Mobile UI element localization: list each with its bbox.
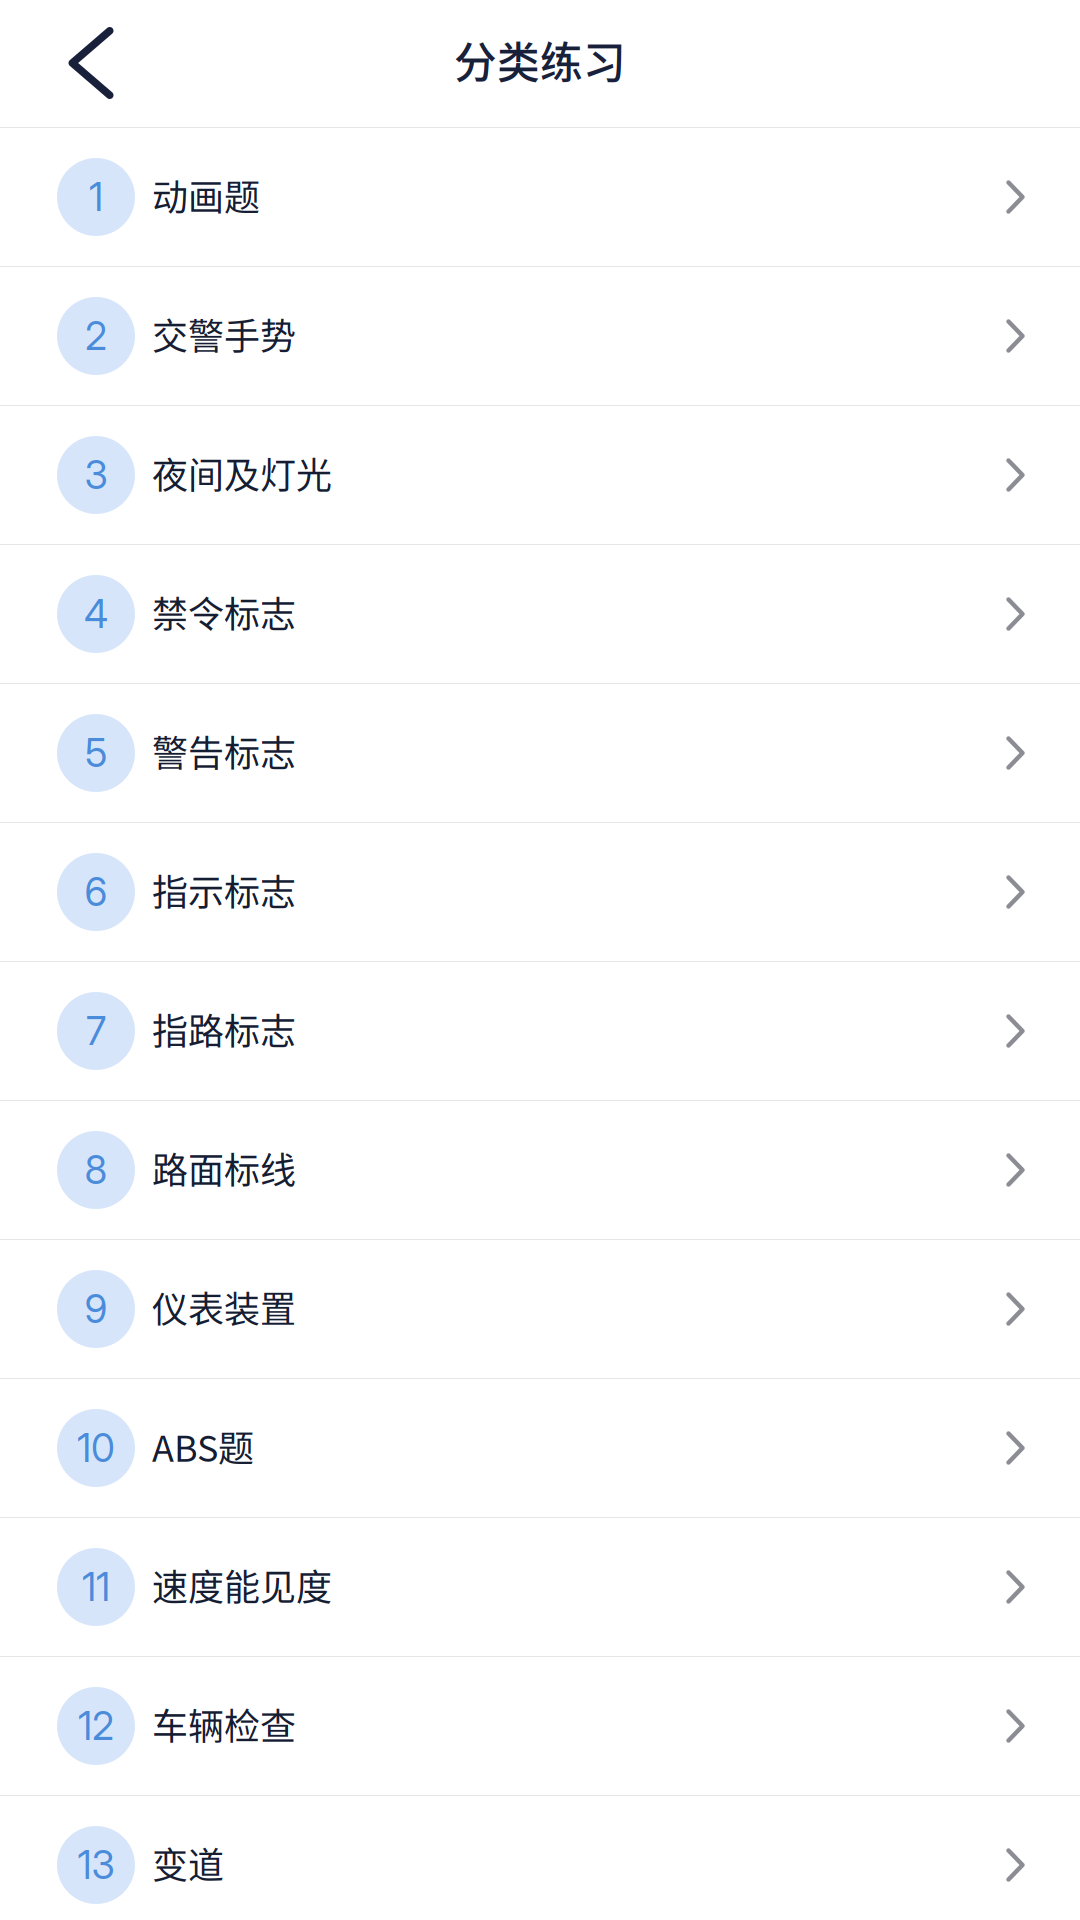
staticText: 分类练习	[454, 29, 626, 91]
button[interactable]: Back	[35, 7, 147, 119]
staticText: ABS题	[152, 1420, 254, 1472]
staticText: 禁令标志	[152, 586, 296, 638]
staticText: 变道	[152, 1837, 224, 1889]
button[interactable]: 3. 夜间及灯光	[0, 406, 1080, 544]
button[interactable]: 5. 警告标志	[0, 684, 1080, 822]
button[interactable]: 13. 变道	[0, 1796, 1080, 1920]
staticText: 9	[84, 1286, 107, 1332]
staticText: 8	[84, 1147, 107, 1193]
button[interactable]: 8. 路面标线	[0, 1101, 1080, 1239]
staticText: 6	[84, 869, 107, 915]
staticText: 速度能见度	[152, 1559, 332, 1611]
staticText: 2	[85, 313, 107, 359]
button[interactable]: 10. ABS题	[0, 1379, 1080, 1517]
staticText: 仪表装置	[152, 1281, 296, 1333]
staticText: 12	[78, 1703, 114, 1749]
staticText: 5	[85, 730, 107, 776]
button[interactable]: 9. 仪表装置	[0, 1240, 1080, 1378]
staticText: 1	[89, 174, 103, 220]
staticText: 夜间及灯光	[152, 447, 332, 499]
button[interactable]: 4. 禁令标志	[0, 545, 1080, 683]
staticText: 指示标志	[152, 864, 296, 916]
staticText: 11	[82, 1564, 110, 1610]
button[interactable]: 7. 指路标志	[0, 962, 1080, 1100]
button[interactable]: 1. 动画题	[0, 128, 1080, 266]
staticText: 3	[84, 452, 107, 498]
staticText: 4	[84, 591, 108, 637]
staticText: 路面标线	[152, 1142, 296, 1194]
button[interactable]: 11. 速度能见度	[0, 1518, 1080, 1656]
button[interactable]: 2. 交警手势	[0, 267, 1080, 405]
staticText: 指路标志	[152, 1003, 296, 1055]
staticText: 10	[77, 1425, 115, 1471]
staticText: 交警手势	[152, 308, 296, 360]
staticText: 车辆检查	[152, 1698, 296, 1750]
button[interactable]: 12. 车辆检查	[0, 1657, 1080, 1795]
staticText: 警告标志	[152, 725, 296, 777]
button[interactable]: 6. 指示标志	[0, 823, 1080, 961]
staticText: 7	[86, 1008, 106, 1054]
staticText: 13	[77, 1842, 114, 1888]
staticText: 动画题	[152, 169, 260, 221]
